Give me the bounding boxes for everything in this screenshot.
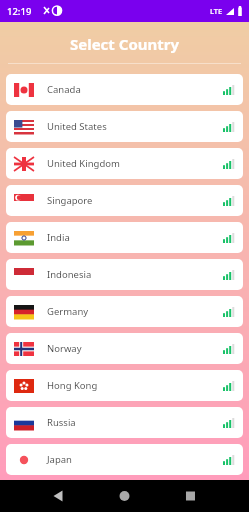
staticText: Germany [47, 305, 89, 318]
button[interactable]: Indonesia [6, 259, 243, 290]
button[interactable]: United Kingdom [6, 148, 243, 179]
staticText: United Kingdom [47, 157, 120, 170]
staticText: Japan [47, 453, 72, 466]
staticText: 12:19 [7, 5, 32, 18]
staticText: Indonesia [47, 268, 92, 281]
staticText: United States [47, 120, 107, 133]
staticText: Hong Kong [47, 379, 98, 392]
staticText: Russia [47, 416, 76, 429]
button[interactable]: Germany [6, 296, 243, 327]
button[interactable]: India [6, 222, 243, 253]
button[interactable]: Hong Kong [6, 370, 243, 401]
button[interactable]: United States [6, 111, 243, 142]
staticText: Select Country [0, 34, 249, 54]
button[interactable]: Singapore [6, 185, 243, 216]
staticText: Canada [47, 83, 81, 96]
button[interactable]: Canada [6, 74, 243, 105]
staticText: LTE [210, 6, 223, 16]
staticText: Norway [47, 342, 82, 355]
button[interactable]: Russia [6, 407, 243, 438]
staticText: India [47, 231, 70, 244]
button[interactable]: Japan [6, 444, 243, 475]
button[interactable]: Norway [6, 333, 243, 364]
staticText: Singapore [47, 194, 93, 207]
